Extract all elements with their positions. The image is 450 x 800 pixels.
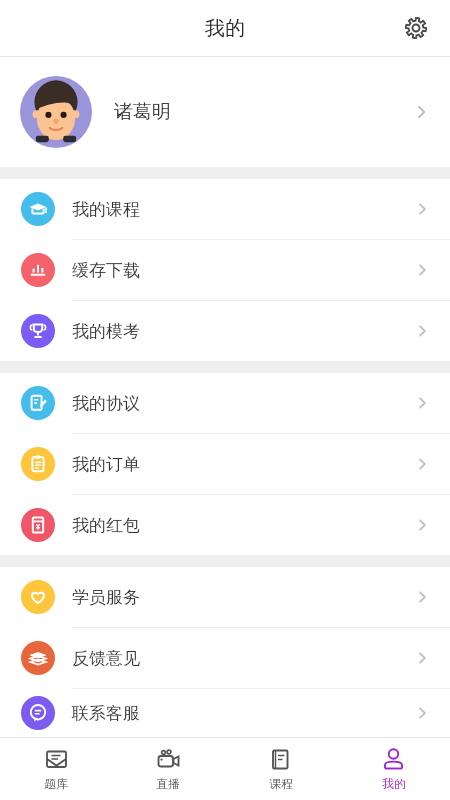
staticText: 学员服务 xyxy=(72,587,140,608)
staticText: 我的订单 xyxy=(72,454,140,475)
button[interactable]: Settings xyxy=(394,6,438,50)
button[interactable]: 题库 xyxy=(0,738,112,800)
button[interactable]: 课程 xyxy=(224,738,337,800)
staticText: 直播 xyxy=(156,776,180,791)
staticText: 缓存下载 xyxy=(72,260,140,281)
button[interactable]: 联系客服 xyxy=(0,689,450,737)
staticText: 我的 xyxy=(205,16,245,41)
button[interactable]: 诸葛明 xyxy=(0,57,450,167)
staticText: 诸葛明 xyxy=(114,100,171,124)
button[interactable]: 我的课程 xyxy=(0,179,450,239)
button[interactable]: 学员服务 xyxy=(0,567,450,627)
staticText: 我的课程 xyxy=(72,199,140,220)
button[interactable]: 我的订单 xyxy=(0,434,450,494)
button[interactable]: 缓存下载 xyxy=(0,240,450,300)
button[interactable]: 反馈意见 xyxy=(0,628,450,688)
staticText: 我的 xyxy=(382,776,406,791)
button[interactable]: 我的协议 xyxy=(0,373,450,433)
staticText: 我的协议 xyxy=(72,393,140,414)
staticText: 联系客服 xyxy=(72,703,140,724)
staticText: 反馈意见 xyxy=(72,648,140,669)
staticText: 我的模考 xyxy=(72,321,140,342)
button[interactable]: 我的 xyxy=(337,738,450,800)
staticText: 课程 xyxy=(269,776,293,791)
button[interactable]: 我的模考 xyxy=(0,301,450,361)
staticText: 我的红包 xyxy=(72,515,140,536)
button[interactable]: 我的红包 xyxy=(0,495,450,555)
button[interactable]: 直播 xyxy=(112,738,224,800)
staticText: 题库 xyxy=(44,776,68,791)
